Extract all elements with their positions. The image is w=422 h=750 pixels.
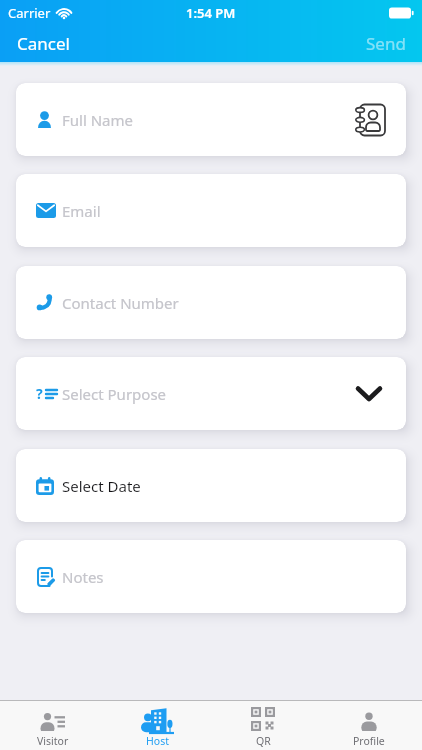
button[interactable]: Notes bbox=[16, 540, 406, 613]
button[interactable]: Profile bbox=[316, 701, 422, 750]
staticText: Contact Number bbox=[62, 293, 179, 313]
button[interactable]: ? bbox=[16, 357, 406, 430]
button[interactable]: Email bbox=[16, 174, 406, 247]
staticText: Profile bbox=[353, 734, 385, 748]
staticText: ? bbox=[36, 384, 43, 403]
staticText: Visitor bbox=[37, 734, 69, 748]
staticText: Cancel bbox=[17, 32, 70, 55]
staticText: Send bbox=[366, 32, 406, 55]
staticText: Full Name bbox=[62, 110, 133, 130]
button[interactable]: Visitor bbox=[0, 701, 105, 750]
staticText: Carrier bbox=[8, 4, 51, 22]
staticText: QR bbox=[256, 734, 271, 748]
staticText: Select Date bbox=[62, 476, 141, 496]
button[interactable]: Contact Number bbox=[16, 266, 406, 339]
staticText: Host bbox=[146, 734, 169, 748]
button[interactable]: Send bbox=[356, 28, 422, 59]
staticText: Email bbox=[62, 201, 101, 221]
button[interactable]: Host bbox=[105, 701, 210, 750]
staticText: 1:54 PM bbox=[186, 4, 236, 22]
staticText: Notes bbox=[62, 567, 104, 587]
button[interactable]: Full Name bbox=[16, 83, 406, 156]
staticText: Select Purpose bbox=[62, 384, 167, 404]
button[interactable]: Select Date bbox=[16, 449, 406, 522]
button[interactable]: Cancel bbox=[0, 28, 80, 59]
button[interactable]: QR bbox=[210, 701, 316, 750]
